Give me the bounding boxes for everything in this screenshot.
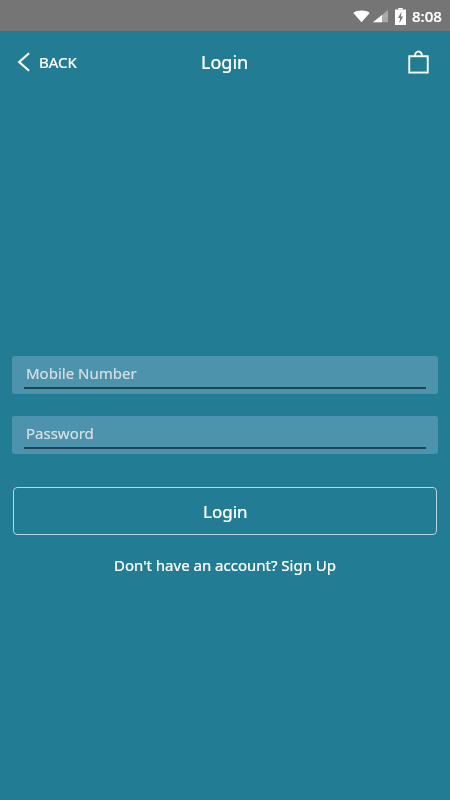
staticText: BACK	[39, 52, 77, 72]
button[interactable]: Cart	[398, 42, 438, 82]
staticText: Login	[203, 500, 248, 523]
button[interactable]: Password	[12, 416, 438, 454]
staticText: Don't have an account? Sign Up	[114, 555, 337, 575]
button[interactable]: Don't have an account? Sign Up	[0, 555, 450, 575]
staticText: Mobile Number	[26, 363, 137, 383]
button[interactable]: Login	[13, 487, 437, 535]
button[interactable]: Mobile Number	[12, 356, 438, 394]
button[interactable]: BACK	[14, 46, 81, 78]
staticText: 8:08	[412, 6, 442, 26]
staticText: Login	[201, 50, 249, 75]
staticText: Password	[26, 423, 94, 443]
